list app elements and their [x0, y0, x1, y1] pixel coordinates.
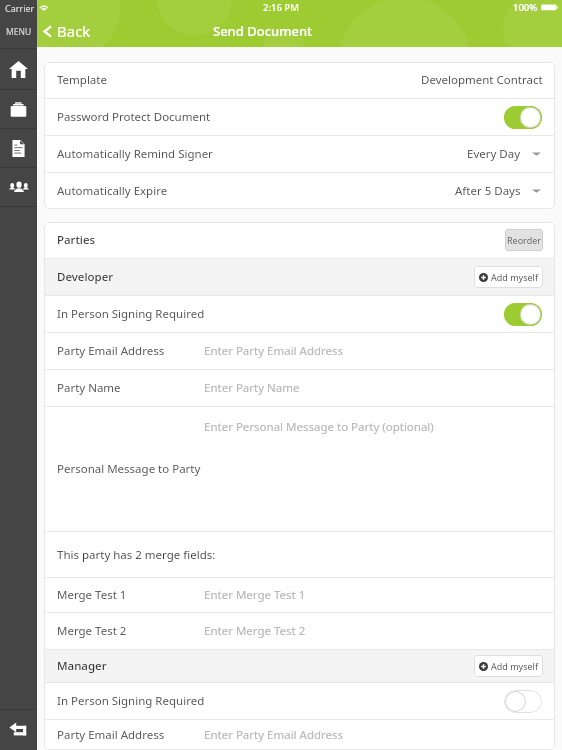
staticText: Back — [57, 21, 91, 41]
button[interactable]: Add myself — [474, 266, 543, 288]
staticText: In Person Signing Required — [57, 306, 205, 322]
staticText: Send Document — [213, 22, 313, 40]
button[interactable]: Template — [44, 62, 555, 98]
button[interactable]: Party Name — [44, 370, 555, 406]
staticText: Enter Party Email Address — [204, 343, 344, 359]
staticText: Merge Test 2 — [57, 623, 127, 639]
staticText: 100% — [513, 1, 538, 14]
staticText: Parties — [57, 232, 96, 248]
button[interactable]: On — [504, 303, 542, 326]
staticText: Automatically Expire — [57, 183, 168, 199]
staticText: 2:16 PM — [263, 1, 299, 14]
staticText: Add myself — [491, 271, 538, 283]
button[interactable]: In Person Signing Required — [44, 296, 555, 332]
staticText: After 5 Days — [455, 183, 521, 199]
staticText: Carrier — [5, 2, 35, 14]
staticText: Automatically Remind Signer — [57, 146, 213, 162]
button[interactable]: In Person Signing Required — [44, 683, 555, 719]
staticText: Enter Personal Message to Party (optiona… — [204, 419, 434, 435]
staticText: Developer — [57, 269, 114, 285]
staticText: Party Email Address — [57, 343, 165, 359]
button[interactable]: Add myself — [474, 655, 543, 677]
button[interactable]: Home — [0, 49, 37, 89]
button[interactable]: This party has 2 merge fields: — [44, 532, 555, 577]
button[interactable]: Off — [504, 690, 542, 713]
button[interactable]: Reorder — [505, 229, 543, 251]
button[interactable]: Documents — [0, 129, 37, 167]
staticText: Password Protect Document — [57, 109, 211, 125]
button[interactable]: Back — [42, 15, 91, 47]
staticText: Development Contract — [421, 72, 543, 88]
staticText: Reorder — [507, 234, 541, 246]
button[interactable]: Merge Test 2 — [44, 613, 555, 649]
button[interactable]: Parties — [44, 222, 555, 258]
button[interactable]: Party Email Address — [44, 333, 555, 369]
staticText: Enter Merge Test 1 — [204, 587, 306, 603]
staticText: Every Day — [467, 146, 521, 162]
staticText: In Person Signing Required — [57, 693, 205, 709]
staticText: Add myself — [491, 660, 538, 672]
staticText: Enter Party Name — [204, 380, 300, 396]
button[interactable]: MENU — [0, 15, 37, 48]
staticText: Enter Merge Test 2 — [204, 623, 306, 639]
staticText: Party Name — [57, 380, 121, 396]
button[interactable]: Automatically Remind Signer — [44, 136, 555, 172]
button[interactable]: Party Email Address — [44, 720, 555, 750]
button[interactable]: Contacts — [0, 168, 37, 206]
button[interactable]: Merge Test 1 — [44, 578, 555, 612]
staticText: Manager — [57, 658, 107, 674]
button[interactable]: Manager — [44, 650, 555, 682]
staticText: This party has 2 merge fields: — [57, 547, 216, 563]
button[interactable]: Log out — [0, 710, 37, 750]
staticText: Template — [57, 72, 107, 88]
staticText: Party Email Address — [57, 727, 165, 743]
button[interactable]: Password Protect Document — [44, 99, 555, 135]
staticText: MENU — [6, 26, 32, 38]
button[interactable]: Automatically Expire — [44, 173, 555, 209]
button[interactable]: Personal Message to Party — [44, 407, 555, 531]
staticText: Merge Test 1 — [57, 587, 127, 603]
button[interactable]: Briefcase — [0, 90, 37, 128]
staticText: Enter Party Email Address — [204, 727, 344, 743]
button[interactable]: On — [504, 106, 542, 129]
button[interactable]: Developer — [44, 259, 555, 295]
staticText: Personal Message to Party — [57, 461, 201, 477]
